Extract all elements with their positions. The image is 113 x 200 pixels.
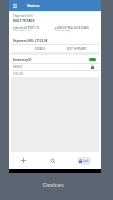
staticText: 08001B bbox=[13, 65, 23, 69]
button[interactable]: Lock bbox=[79, 159, 89, 163]
other: Locked bbox=[91, 65, 94, 69]
button[interactable]: EDIT SHIPMENT bbox=[67, 47, 87, 51]
staticText: Devices bbox=[27, 3, 40, 8]
staticText: Inventory(2) bbox=[13, 58, 32, 62]
staticText: Lock bbox=[83, 159, 89, 163]
staticText: Devices bbox=[43, 181, 64, 189]
button[interactable]: Shipment Info bbox=[11, 12, 99, 52]
button[interactable]: Add bbox=[9, 152, 38, 169]
staticText: Shipment Info bbox=[13, 14, 34, 18]
button[interactable]: DETAILS bbox=[35, 47, 46, 51]
button[interactable]: Status bbox=[89, 58, 96, 61]
staticText: 07/19/2008 bbox=[58, 29, 71, 32]
other: Menu bbox=[13, 4, 17, 8]
staticText: INDUSTRIAL BOULEVARD bbox=[58, 26, 90, 30]
staticText: 0061757405 bbox=[13, 18, 35, 23]
other: Add bbox=[21, 158, 26, 163]
staticText: L532-08 bbox=[13, 72, 23, 76]
button[interactable] bbox=[9, 0, 101, 11]
button[interactable]: Scan bbox=[38, 152, 66, 169]
staticText: 07/19/21 1:32 bbox=[16, 29, 31, 32]
other: Scan bbox=[50, 158, 55, 163]
staticText: Shipment SKU: L7132-08 bbox=[13, 39, 48, 43]
staticText: South LA PORT LTL bbox=[16, 26, 40, 30]
